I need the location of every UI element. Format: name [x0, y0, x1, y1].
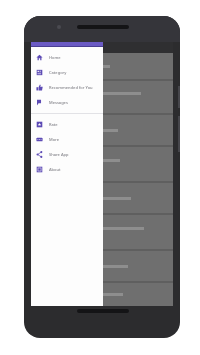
staticText: Messages [49, 100, 68, 105]
button[interactable] [31, 251, 173, 281]
staticText: Category [49, 70, 67, 75]
staticText: Home [49, 55, 61, 60]
button[interactable] [31, 147, 173, 181]
button[interactable]: Rate [31, 117, 103, 132]
staticText: More [49, 137, 60, 142]
button[interactable]: About [31, 162, 103, 177]
button[interactable] [31, 53, 173, 79]
button[interactable]: Share App [31, 147, 103, 162]
button[interactable] [31, 115, 173, 145]
button[interactable]: Messages [31, 95, 103, 110]
staticText: About [49, 167, 61, 172]
button[interactable]: Recommended for You [31, 80, 103, 95]
button[interactable] [31, 283, 173, 306]
staticText: Rate [49, 122, 58, 127]
button[interactable] [31, 183, 173, 213]
staticText: Recommended for You [49, 85, 93, 90]
button[interactable] [31, 215, 173, 249]
button[interactable]: Category [31, 65, 103, 80]
staticText: Share App [49, 152, 69, 157]
button[interactable] [31, 81, 173, 113]
button[interactable]: More [31, 132, 103, 147]
button[interactable]: Home [31, 50, 103, 65]
